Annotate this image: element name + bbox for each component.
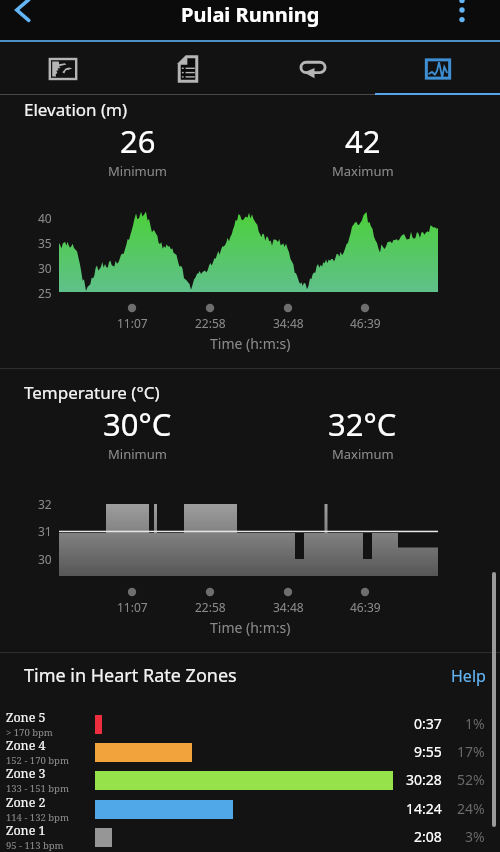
staticText: Zone 2 [6, 794, 46, 811]
staticText: 26 [120, 120, 156, 162]
staticText: 32°C [328, 403, 397, 445]
staticText: 25 [38, 285, 52, 301]
staticText: Minimum [108, 162, 167, 180]
staticText: Help [451, 665, 486, 687]
staticText: 11:07 [117, 599, 148, 615]
staticText: 11:07 [117, 315, 148, 331]
staticText: 24% [457, 799, 485, 818]
staticText: 34:48 [273, 315, 304, 331]
staticText: 46:39 [350, 315, 381, 331]
staticText: Zone 4 [6, 737, 46, 754]
staticText: 2:08 [414, 827, 442, 846]
staticText: Zone 3 [6, 765, 46, 782]
staticText: > 170 bpm [6, 726, 53, 739]
staticText: Pulai Running [181, 1, 320, 28]
staticText: 34:48 [273, 599, 304, 615]
staticText: Time (h:m:s) [210, 618, 291, 637]
staticText: 152 - 170 bpm [6, 754, 69, 767]
staticText: 31 [38, 523, 52, 539]
button[interactable]: Map [0, 42, 125, 95]
staticText: 30 [38, 551, 52, 567]
staticText: Time (h:m:s) [210, 334, 291, 353]
staticText: 95 - 113 bpm [6, 839, 64, 852]
staticText: 0:37 [414, 714, 442, 733]
staticText: 46:39 [350, 599, 381, 615]
staticText: 22:58 [195, 599, 226, 615]
staticText: Maximum [332, 162, 394, 180]
staticText: 30:28 [406, 770, 442, 789]
staticText: Temperature (°C) [24, 381, 160, 404]
staticText: 3% [465, 827, 485, 846]
staticText: 17% [457, 742, 485, 761]
button[interactable]: More options [444, 0, 480, 24]
button[interactable]: Details [125, 42, 250, 95]
staticText: Time in Heart Rate Zones [24, 663, 237, 688]
staticText: 35 [38, 235, 52, 251]
staticText: 42 [345, 120, 381, 162]
staticText: Elevation (m) [24, 98, 128, 121]
button[interactable]: Laps [250, 42, 375, 95]
staticText: 32 [38, 496, 52, 512]
button[interactable]: Help [449, 665, 488, 687]
staticText: 30°C [103, 403, 172, 445]
staticText: 30 [38, 260, 52, 276]
staticText: 133 - 151 bpm [6, 782, 69, 795]
staticText: Minimum [108, 445, 167, 463]
staticText: 114 - 132 bpm [6, 811, 69, 824]
staticText: Maximum [332, 445, 394, 463]
button[interactable]: Charts [375, 42, 500, 95]
staticText: 14:24 [406, 799, 442, 818]
staticText: 22:58 [195, 315, 226, 331]
staticText: 9:55 [414, 742, 442, 761]
staticText: 52% [457, 770, 485, 789]
button[interactable]: Back [4, 0, 40, 24]
staticText: 1% [465, 714, 485, 733]
staticText: 40 [38, 210, 52, 226]
staticText: Zone 5 [6, 709, 46, 726]
staticText: Zone 1 [6, 822, 46, 839]
